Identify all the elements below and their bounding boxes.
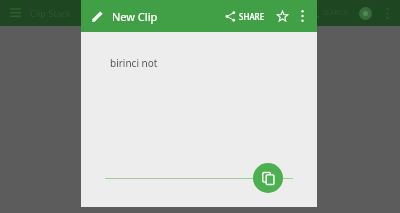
staticText: SHARE (239, 11, 265, 22)
staticText: Clip Stack (30, 7, 71, 19)
button[interactable]: Copy (253, 163, 283, 193)
button[interactable]: Open navigation drawer (6, 4, 24, 22)
button[interactable]: Edit (90, 9, 105, 24)
button[interactable]: Favorite (274, 8, 290, 24)
button[interactable]: More options (294, 8, 310, 24)
button[interactable]: SHARE (221, 7, 269, 26)
staticText: SEARCH (322, 8, 349, 18)
button[interactable]: More options (380, 6, 394, 20)
staticText: New Clip (112, 9, 158, 24)
button[interactable]: Account (359, 7, 372, 20)
button[interactable]: SEARCH (305, 8, 353, 18)
staticText: birinci not (110, 56, 158, 70)
